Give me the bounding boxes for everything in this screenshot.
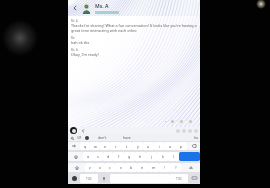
button[interactable]: Share	[187, 118, 194, 125]
button[interactable]: f	[113, 152, 124, 161]
button[interactable]: w	[90, 142, 100, 150]
staticText: i	[159, 144, 160, 149]
button[interactable]: Thumb down	[178, 118, 185, 125]
button[interactable]: v	[115, 163, 126, 172]
staticText: j	[151, 154, 152, 159]
button[interactable]: Assistant	[70, 127, 77, 134]
button[interactable]: c	[105, 163, 115, 172]
button[interactable]: Search	[70, 136, 74, 140]
button[interactable]: Caps lock	[68, 152, 83, 161]
staticText: k	[162, 154, 164, 159]
button[interactable]: Enter	[179, 152, 200, 161]
button[interactable]: z	[85, 163, 95, 172]
staticText: !	[164, 165, 165, 170]
staticText: ?123	[176, 177, 182, 181]
button[interactable]: Back	[70, 3, 80, 13]
staticText: n	[141, 165, 144, 170]
button[interactable]: More	[163, 119, 168, 124]
button[interactable]: Up	[181, 163, 200, 172]
button[interactable]: Profile picture	[81, 3, 92, 14]
staticText: g	[128, 154, 131, 159]
staticText: h	[139, 154, 142, 159]
staticText: have	[123, 135, 131, 140]
staticText: f	[118, 154, 120, 159]
staticText: Ms. A	[95, 3, 109, 10]
button[interactable]: b	[126, 163, 137, 172]
staticText: Ms. A	[71, 48, 78, 52]
staticText: s	[97, 154, 99, 159]
button[interactable]: h	[135, 152, 146, 161]
button[interactable]: l	[168, 152, 179, 161]
staticText: z	[89, 165, 91, 170]
staticText: don't	[98, 135, 107, 140]
button[interactable]: a	[83, 152, 93, 161]
staticText: t	[126, 144, 128, 149]
staticText: ?	[175, 165, 177, 170]
button[interactable]: Thumb up	[169, 118, 176, 125]
staticText: p	[180, 144, 183, 149]
staticText: q	[84, 144, 87, 149]
button[interactable]: !	[159, 163, 170, 172]
button[interactable]: ?	[170, 163, 181, 172]
button[interactable]: Hide keyboard	[192, 176, 197, 181]
staticText: r	[115, 144, 117, 149]
button[interactable]: d	[103, 152, 113, 161]
staticText: Ms. A	[71, 19, 78, 23]
staticText: Thanks for sharing! What a fun conversat…	[71, 23, 197, 33]
staticText: y	[137, 144, 139, 149]
button[interactable]: n	[137, 163, 148, 172]
staticText: u	[147, 144, 150, 149]
staticText: o	[169, 144, 172, 149]
staticText: hah ok thx	[71, 40, 90, 45]
button[interactable]: r	[110, 142, 121, 150]
staticText: ha	[194, 135, 198, 140]
button[interactable]: e	[100, 142, 110, 150]
button[interactable]: Collapse	[81, 129, 85, 133]
button[interactable]: k	[157, 152, 168, 161]
staticText: d	[107, 154, 110, 159]
button[interactable]: q	[80, 142, 90, 150]
staticText: l	[173, 154, 174, 159]
button[interactable]: j	[146, 152, 157, 161]
button[interactable]: g	[124, 152, 135, 161]
button[interactable]: m	[148, 163, 159, 172]
button[interactable]: Voice input	[102, 177, 106, 181]
button[interactable]: Shift	[68, 163, 85, 172]
button[interactable]: o	[165, 142, 176, 150]
staticText: v	[120, 165, 122, 170]
button[interactable]: Sticker	[85, 136, 89, 140]
button[interactable]: p	[176, 142, 187, 150]
staticText: c	[109, 165, 111, 170]
button[interactable]: Emoji	[72, 176, 77, 181]
button[interactable]: ?123	[80, 174, 98, 183]
staticText: GIF	[77, 136, 82, 140]
staticText: m	[152, 165, 156, 170]
button[interactable]: Backspace	[187, 142, 200, 150]
staticText: Me	[71, 36, 75, 40]
button[interactable]: x	[95, 163, 105, 172]
button[interactable]: i	[154, 142, 165, 150]
staticText: e	[104, 144, 107, 149]
button[interactable]: t	[121, 142, 132, 150]
button[interactable]: Tab	[68, 142, 80, 150]
staticText: x	[99, 165, 101, 170]
staticText: b	[130, 165, 133, 170]
button[interactable]: ?123	[170, 174, 188, 183]
staticText: w	[94, 144, 97, 149]
button[interactable]: y	[132, 142, 143, 150]
staticText: a	[87, 154, 90, 159]
button[interactable]: u	[143, 142, 154, 150]
staticText: ?123	[86, 177, 92, 181]
button[interactable]: s	[93, 152, 103, 161]
staticText: Okay, I'm ready!	[71, 52, 99, 57]
